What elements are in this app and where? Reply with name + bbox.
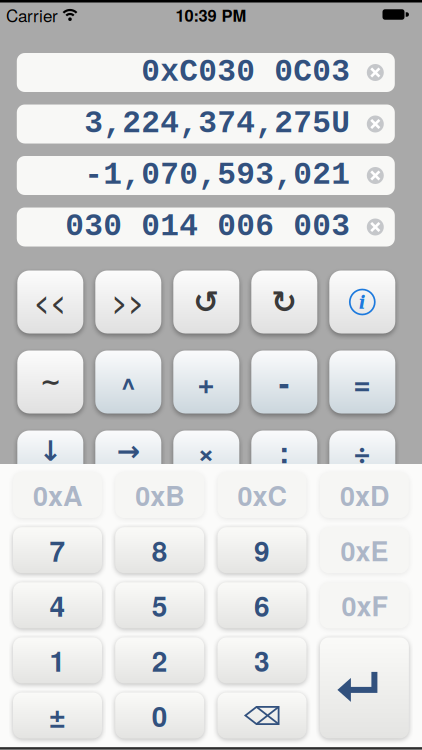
button[interactable]: Roll right — [95, 430, 161, 493]
staticText: 0xC — [237, 476, 286, 514]
button[interactable]: Clear — [367, 64, 384, 81]
staticText: 2 — [152, 640, 168, 680]
button[interactable]: ± — [13, 692, 102, 738]
staticText: 8 — [152, 530, 168, 570]
button[interactable]: 0xA — [13, 472, 102, 518]
staticText: > — [113, 283, 128, 319]
staticText: → — [117, 435, 140, 467]
staticText: ± — [48, 694, 66, 737]
button[interactable]: - — [251, 350, 317, 413]
button[interactable]: Clear — [367, 167, 384, 184]
button[interactable]: = — [329, 350, 395, 413]
button[interactable]: ^ — [95, 350, 161, 413]
button[interactable]: × — [173, 430, 239, 493]
staticText: 0xA — [33, 476, 82, 514]
button[interactable]: 5 — [115, 582, 204, 628]
staticText: i — [359, 292, 366, 313]
staticText: 3,224,374,275U — [84, 106, 350, 142]
button[interactable]: Clear — [367, 115, 384, 132]
staticText: : — [279, 429, 289, 472]
button[interactable]: ÷ — [329, 430, 395, 493]
staticText: < — [51, 283, 66, 319]
button[interactable]: + — [173, 350, 239, 413]
staticText: -1,070,593,021 — [84, 158, 350, 193]
button[interactable]: 9 — [217, 527, 306, 573]
button[interactable]: 0xB — [115, 472, 204, 518]
button[interactable]: : — [251, 430, 317, 493]
staticText: 030 014 006 003 — [65, 209, 350, 245]
staticText: 7 — [49, 530, 65, 570]
staticText: < — [34, 283, 49, 319]
staticText: ÷ — [353, 429, 371, 472]
button[interactable]: 4 — [13, 582, 102, 628]
button[interactable]: Clear — [367, 218, 384, 235]
staticText: 0 — [152, 695, 168, 736]
staticText: Carrier — [6, 3, 58, 27]
staticText: 0xC030 0C03 — [141, 55, 350, 90]
staticText: 4 — [49, 585, 65, 625]
staticText: ↻ — [271, 284, 297, 320]
staticText: 1 — [49, 640, 65, 680]
staticText: 0xF — [341, 586, 387, 625]
button[interactable]: Info — [329, 270, 395, 333]
staticText: ↓ — [39, 435, 62, 467]
button[interactable]: Undo — [173, 270, 239, 333]
button[interactable]: > — [95, 270, 161, 333]
button[interactable]: 7 — [13, 527, 102, 573]
button[interactable]: 0xF — [320, 582, 409, 628]
staticText: 0xB — [135, 476, 184, 514]
button[interactable]: 2 — [115, 637, 204, 683]
staticText: > — [129, 283, 144, 319]
staticText: 9 — [254, 530, 270, 570]
button[interactable]: 3 — [217, 637, 306, 683]
button[interactable]: 1 — [13, 637, 102, 683]
staticText: 10:39 PM — [175, 3, 246, 27]
staticText: 0xE — [340, 531, 388, 570]
staticText: = — [353, 360, 371, 403]
button[interactable]: 0xD — [320, 472, 409, 518]
staticText: 0xD — [340, 476, 389, 514]
staticText: × — [197, 429, 215, 472]
staticText: 3 — [254, 640, 270, 680]
button[interactable]: 0 — [115, 692, 204, 738]
button[interactable]: Roll down — [17, 430, 83, 493]
button[interactable]: < — [17, 270, 83, 333]
staticText: ∼ — [40, 367, 61, 397]
button[interactable]: 0xE — [320, 527, 409, 573]
staticText: ^ — [121, 367, 136, 405]
button[interactable]: 8 — [115, 527, 204, 573]
staticText: ↺ — [193, 284, 219, 320]
button[interactable]: Redo — [251, 270, 317, 333]
button[interactable]: 0xC — [217, 472, 306, 518]
staticText: - — [279, 359, 290, 405]
staticText: 5 — [152, 585, 168, 625]
button[interactable]: 6 — [217, 582, 306, 628]
button[interactable]: Delete — [217, 692, 306, 738]
button[interactable]: Return — [320, 637, 409, 738]
button[interactable]: ∼ — [17, 350, 83, 413]
staticText: + — [197, 360, 215, 403]
staticText: 6 — [254, 585, 270, 625]
